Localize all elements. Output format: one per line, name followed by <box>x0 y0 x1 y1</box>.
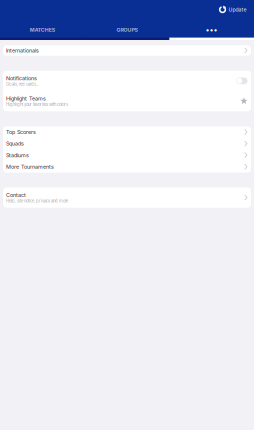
staticText: GROUPS <box>116 27 137 33</box>
button[interactable]: GROUPS <box>85 22 169 40</box>
button[interactable]: Squads <box>3 138 251 149</box>
staticText: More Tournaments <box>6 163 54 170</box>
button[interactable]: ••• <box>169 22 254 40</box>
staticText: Internationals <box>6 47 39 54</box>
button[interactable]: Update <box>217 5 248 14</box>
staticText: Help, site notice, privacy and more <box>6 198 68 203</box>
button[interactable]: Notifications <box>3 71 251 91</box>
staticText: Squads <box>6 140 24 147</box>
button[interactable]: Stadiums <box>3 149 251 161</box>
staticText: ••• <box>206 25 218 34</box>
staticText: Update <box>228 7 246 13</box>
button[interactable]: Contact <box>3 187 251 208</box>
button[interactable]: Highlight Teams <box>3 91 251 111</box>
staticText: Goals, red cards... <box>6 82 39 87</box>
staticText: Highlight your favorites with colors <box>6 102 68 107</box>
staticText: Stadiums <box>6 152 29 158</box>
staticText: Highlight Teams <box>6 95 46 102</box>
button[interactable]: Internationals <box>3 45 251 56</box>
button[interactable]: More Tournaments <box>3 161 251 173</box>
staticText: Contact <box>6 192 26 198</box>
staticText: Notifications <box>6 75 37 81</box>
staticText: Top Scorers <box>6 129 36 135</box>
button[interactable]: Top Scorers <box>3 126 251 138</box>
staticText: MATCHES <box>30 27 55 33</box>
button[interactable]: MATCHES <box>0 22 85 40</box>
